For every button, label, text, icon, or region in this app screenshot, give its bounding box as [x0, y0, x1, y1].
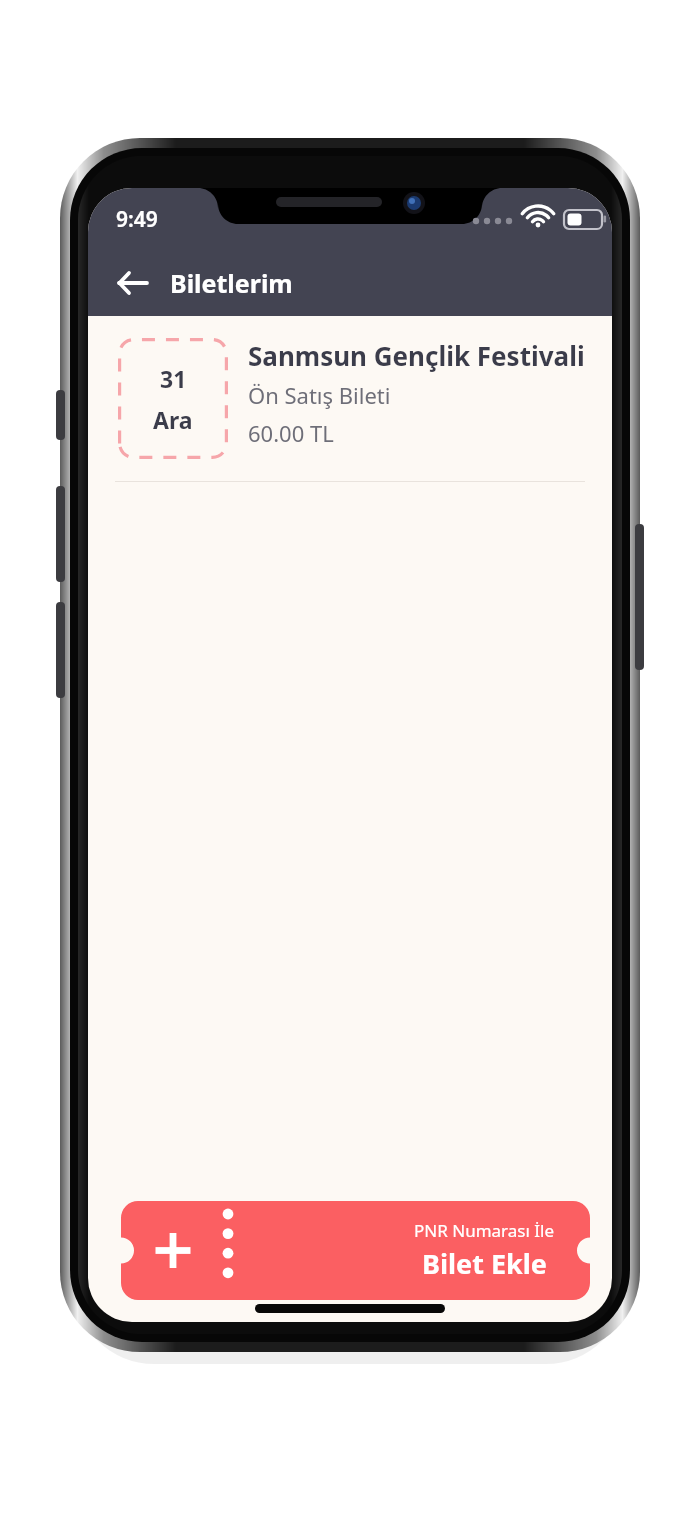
staticText: PNR Numarası İle [414, 1219, 554, 1242]
staticText: Bilet Ekle [422, 1245, 547, 1282]
staticText: Sanmsun Gençlik Festivali [248, 338, 585, 373]
staticText: Ara [153, 404, 193, 435]
staticText: Ön Satış Bileti [248, 380, 391, 410]
staticText: 60.00 TL [248, 418, 334, 448]
button[interactable]: PNR Numarası İle [121, 1201, 590, 1300]
button[interactable]: Back [106, 256, 160, 310]
staticText: 31 [160, 363, 187, 394]
staticText: 9:49 [116, 205, 158, 234]
button[interactable]: 31 [88, 316, 612, 481]
staticText: Biletlerim [170, 266, 293, 300]
